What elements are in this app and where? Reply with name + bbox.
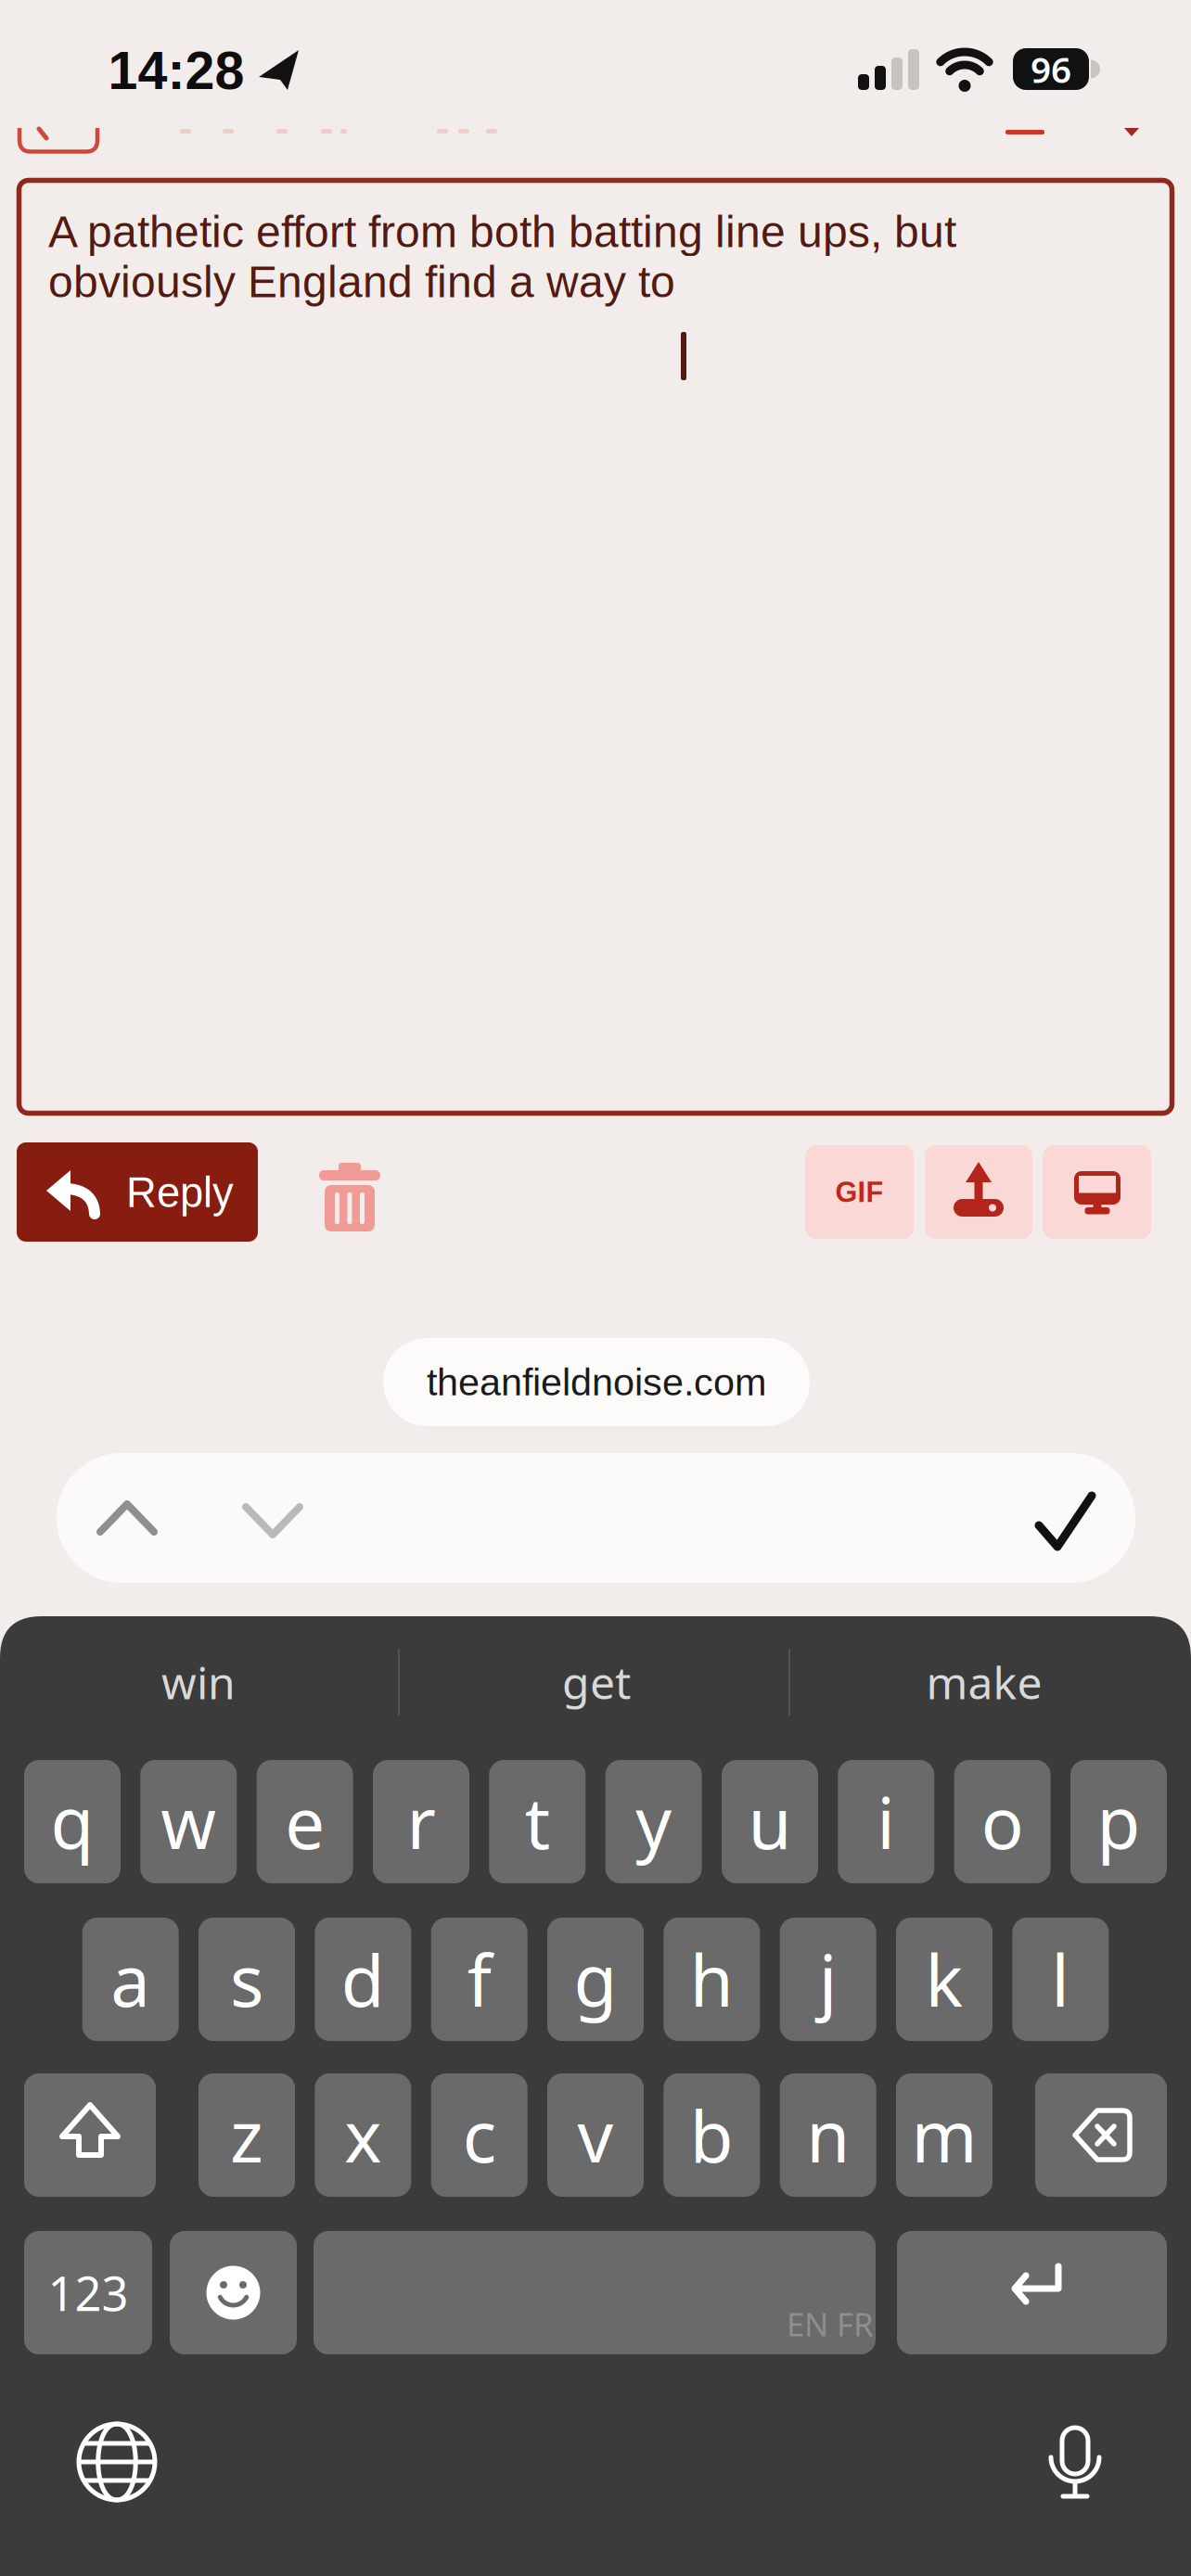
button[interactable]: p (1070, 1760, 1167, 1883)
staticText: f (467, 1932, 491, 2026)
button[interactable]: r (373, 1760, 469, 1883)
button[interactable]: g (547, 1918, 644, 2041)
staticText: x (344, 2088, 382, 2182)
button[interactable]: a (82, 1918, 179, 2041)
button[interactable]: i (838, 1760, 934, 1883)
button[interactable]: Next keyboard (66, 2411, 168, 2513)
button[interactable]: y (605, 1760, 702, 1883)
staticText: 14:28 (108, 41, 244, 100)
staticText: g (574, 1932, 617, 2026)
staticText: theanfieldnoise.com (427, 1361, 766, 1404)
button[interactable]: Return (897, 2231, 1167, 2354)
staticText: 123 (48, 2262, 128, 2324)
button[interactable]: v (547, 2073, 644, 2197)
button[interactable]: Next field (226, 1474, 319, 1567)
button[interactable]: 123 (24, 2231, 152, 2354)
button[interactable]: Shift (24, 2073, 156, 2197)
staticText: i (877, 1775, 895, 1868)
button[interactable]: Dictate (1024, 2411, 1126, 2513)
staticText: make (926, 1653, 1042, 1712)
staticText: u (748, 1775, 792, 1868)
staticText: y (635, 1775, 672, 1868)
staticText: win (161, 1653, 236, 1712)
staticText: k (925, 1932, 963, 2026)
staticText: GIF (835, 1176, 884, 1208)
button[interactable]: Done (1009, 1474, 1121, 1567)
staticText: b (690, 2088, 734, 2182)
staticText: h (690, 1932, 734, 2026)
button[interactable]: Delete (1035, 2073, 1167, 2197)
button[interactable]: get (420, 1640, 773, 1724)
button[interactable]: Insert GIF (805, 1145, 914, 1239)
staticText: s (230, 1932, 263, 2026)
button[interactable]: j (780, 1918, 876, 2041)
button[interactable]: Insert from screen (1043, 1145, 1151, 1239)
button[interactable]: w (140, 1760, 237, 1883)
button[interactable]: Previous field (81, 1472, 173, 1564)
staticText: e (285, 1775, 325, 1868)
staticText: n (806, 2088, 850, 2182)
staticText: get (562, 1653, 631, 1712)
button[interactable]: Reply (17, 1142, 258, 1242)
button[interactable]: make (808, 1640, 1160, 1724)
button[interactable]: b (663, 2073, 760, 2197)
staticText: Reply (126, 1169, 234, 1216)
staticText: d (341, 1932, 385, 2026)
button[interactable]: m (896, 2073, 992, 2197)
staticText: c (463, 2088, 496, 2182)
button[interactable]: s (198, 1918, 295, 2041)
staticText: v (577, 2088, 614, 2182)
staticText: a (111, 1932, 150, 2026)
button[interactable]: f (431, 1918, 528, 2041)
button[interactable]: q (24, 1760, 121, 1883)
staticText: w (161, 1775, 216, 1868)
button[interactable]: h (664, 1918, 760, 2041)
button[interactable]: d (315, 1918, 411, 2041)
button[interactable]: x (315, 2073, 411, 2197)
button[interactable]: Delete draft (319, 1163, 380, 1231)
button[interactable]: z (198, 2073, 295, 2197)
staticText: t (525, 1775, 550, 1868)
button[interactable]: n (780, 2073, 876, 2197)
staticText: q (51, 1775, 94, 1868)
button[interactable]: c (431, 2073, 528, 2197)
button[interactable]: t (489, 1760, 586, 1883)
button[interactable]: k (896, 1918, 992, 2041)
button[interactable]: Upload attachment (925, 1145, 1032, 1239)
staticText: j (819, 1932, 837, 2026)
button[interactable]: l (1012, 1918, 1109, 2041)
button[interactable]: win (22, 1640, 375, 1724)
staticText: EN FR (787, 2302, 874, 2345)
staticText: l (1051, 1932, 1070, 2026)
button[interactable]: Emoji (170, 2231, 297, 2354)
button[interactable]: e (257, 1760, 353, 1883)
button[interactable]: u (722, 1760, 818, 1883)
button[interactable]: Space (314, 2231, 876, 2354)
staticText: obviously England find a way to (48, 257, 675, 307)
staticText: p (1097, 1775, 1140, 1868)
staticText: m (911, 2088, 977, 2182)
staticText: z (230, 2088, 263, 2182)
staticText: 96 (1031, 45, 1071, 93)
staticText: r (407, 1775, 435, 1868)
staticText: A pathetic effort from both batting line… (48, 207, 956, 256)
button[interactable]: o (954, 1760, 1051, 1883)
staticText: o (981, 1775, 1024, 1868)
